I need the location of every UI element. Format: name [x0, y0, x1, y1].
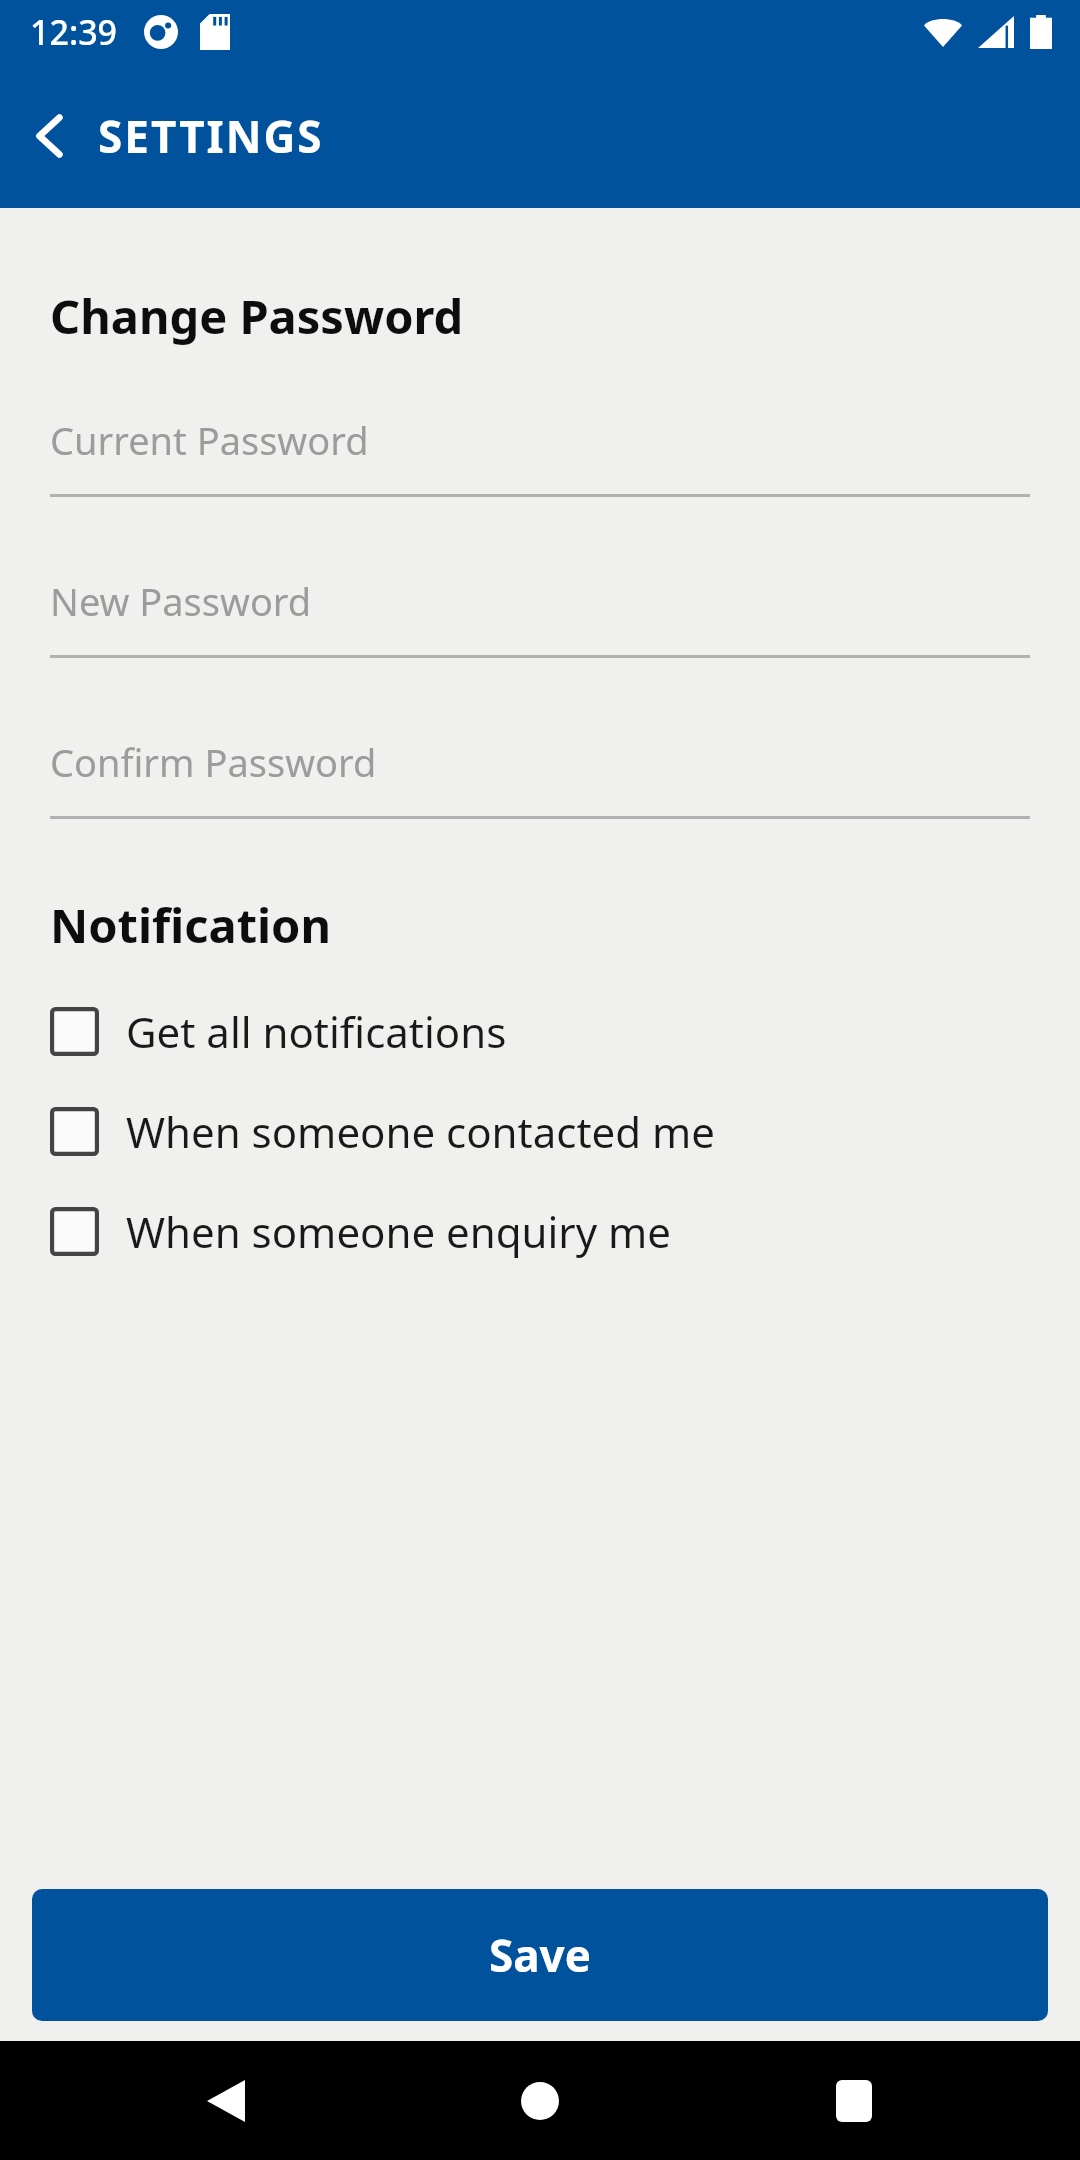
button[interactable]: When someone contacted me [0, 1081, 1080, 1181]
staticText: Change Password [50, 284, 464, 348]
staticText: SETTINGS [98, 106, 324, 166]
staticText: When someone enquiry me [126, 1203, 671, 1260]
staticText: 12:39 [30, 9, 118, 55]
staticText: Notification [50, 893, 332, 957]
button[interactable]: Get all notifications [0, 981, 1080, 1081]
button[interactable]: Home [474, 2041, 606, 2160]
staticText: When someone contacted me [126, 1103, 716, 1160]
staticText: New Password [50, 575, 312, 627]
button[interactable]: Confirm Password [50, 708, 1030, 869]
button[interactable]: Current Password [50, 386, 1030, 547]
staticText: Get all notifications [126, 1003, 507, 1060]
button[interactable]: New Password [50, 547, 1030, 708]
button[interactable]: Recent apps [788, 2041, 920, 2160]
button[interactable]: Back [0, 97, 98, 175]
button[interactable]: When someone enquiry me [0, 1181, 1080, 1281]
button[interactable]: Back [160, 2041, 292, 2160]
staticText: Current Password [50, 414, 369, 466]
staticText: Save [489, 1925, 591, 1985]
button[interactable]: Save [32, 1889, 1048, 2021]
staticText: Confirm Password [50, 736, 377, 788]
